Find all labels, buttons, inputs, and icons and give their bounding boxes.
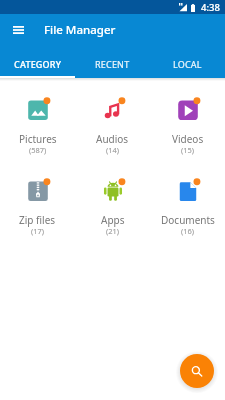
button[interactable]: Pictures (0, 98, 75, 156)
staticText: Documents (161, 213, 215, 227)
button[interactable]: Search (180, 354, 214, 388)
staticText: RECENT (95, 58, 130, 70)
staticText: (587) (29, 145, 47, 155)
staticText: LOCAL (173, 58, 202, 70)
staticText: (17) (31, 226, 45, 236)
staticText: CATEGORY (14, 58, 62, 70)
button[interactable]: LOCAL (150, 46, 225, 78)
staticText: (15) (181, 145, 195, 155)
button[interactable]: Audios (75, 98, 150, 156)
staticText: File Manager (44, 22, 116, 38)
staticText: 4:38 (201, 1, 220, 14)
staticText: Apps (101, 213, 125, 227)
staticText: (16) (181, 226, 195, 236)
staticText: Zip files (19, 213, 56, 227)
staticText: Videos (172, 132, 204, 146)
button[interactable]: Zip files (0, 179, 75, 237)
button[interactable]: CATEGORY (0, 46, 75, 78)
staticText: (14) (106, 145, 120, 155)
button[interactable]: Menu (0, 14, 36, 46)
staticText: (21) (106, 226, 120, 236)
button[interactable]: Videos (150, 98, 225, 156)
button[interactable]: RECENT (75, 46, 150, 78)
button[interactable]: Apps (75, 179, 150, 237)
button[interactable]: Documents (150, 179, 225, 237)
staticText: Pictures (19, 132, 57, 146)
staticText: Audios (96, 132, 129, 146)
